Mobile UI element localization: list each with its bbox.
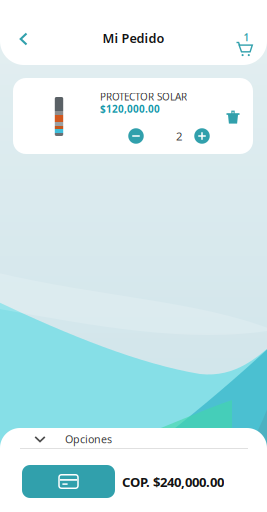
staticText: 1: [243, 30, 249, 44]
staticText: Mi Pedido: [102, 29, 164, 47]
button[interactable]: Back: [9, 24, 39, 54]
button[interactable]: Decrease quantity: [124, 124, 148, 148]
button[interactable]: Delete item: [220, 104, 246, 130]
staticText: 2: [176, 128, 182, 144]
staticText: COP. $240,000.00: [122, 473, 224, 491]
staticText: PROTECTOR SOLAR: [100, 90, 187, 103]
button[interactable]: Pay with card: [22, 465, 115, 498]
button[interactable]: Opciones: [33, 429, 259, 449]
button[interactable]: Increase quantity: [190, 124, 214, 148]
staticText: $120,000.00: [100, 102, 160, 116]
button[interactable]: Cart: [224, 24, 254, 52]
staticText: Opciones: [65, 432, 112, 446]
